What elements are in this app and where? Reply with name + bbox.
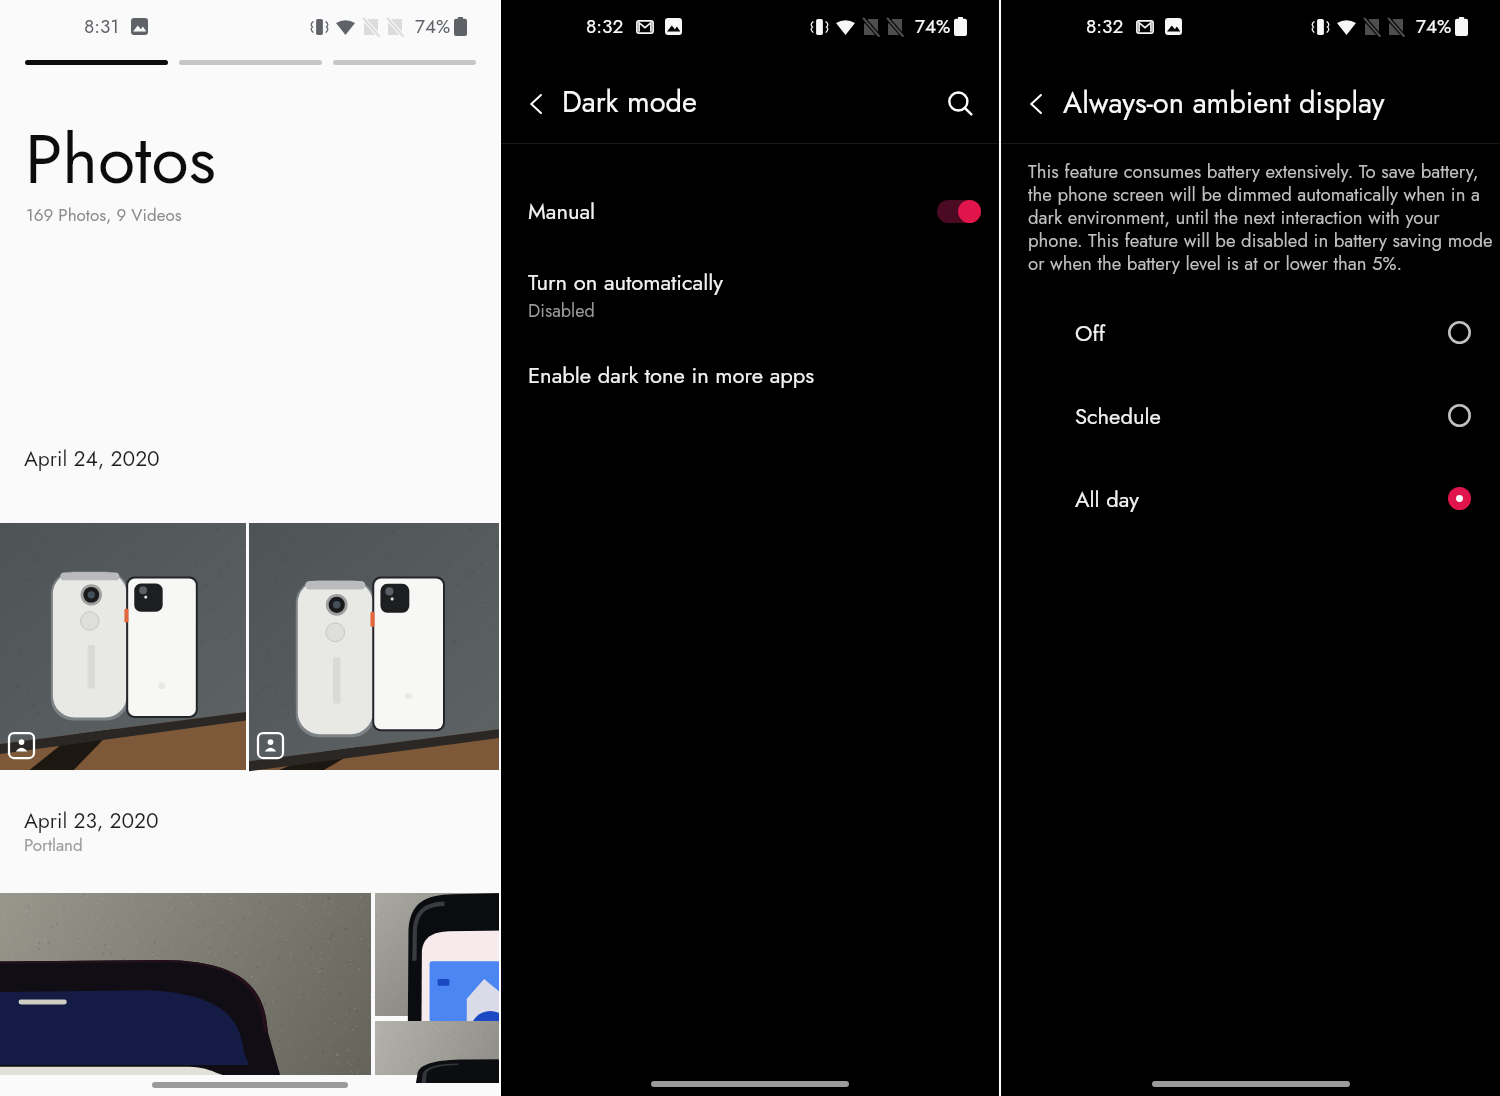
staticText: 8:32 [586,13,624,40]
button[interactable]: Photo [0,523,246,770]
button[interactable]: Enable dark tone in more apps [501,357,999,397]
staticText: All day [1075,483,1139,515]
button[interactable]: All day [1001,457,1500,540]
button[interactable]: Off [1001,291,1500,374]
button[interactable]: Search [939,83,983,127]
staticText: 8:31 [84,13,119,40]
button[interactable]: Turn on automatically [501,264,999,330]
staticText: April 23, 2020 [24,806,159,836]
button[interactable]: Photo [0,893,371,1075]
button[interactable]: Photo [375,1021,499,1075]
staticText: Always-on ambient display [1063,82,1385,124]
button[interactable]: Photo [375,893,499,1016]
button[interactable]: Photos tab [25,60,168,65]
staticText: Enable dark tone in more apps [528,359,815,391]
button[interactable]: Schedule [1001,374,1500,457]
staticText: Schedule [1075,400,1161,432]
staticText: April 24, 2020 [24,444,160,474]
staticText: Dark mode [562,81,697,123]
button[interactable]: Manual [501,180,999,242]
staticText: 74% [915,13,951,40]
staticText: Disabled [528,298,595,324]
staticText: This feature consumes battery extensivel… [1028,158,1493,277]
staticText: Portland [24,833,83,858]
button[interactable]: Tab [333,60,476,65]
staticText: Photos [25,110,216,208]
button[interactable]: Tab [179,60,322,65]
staticText: Manual [528,195,596,227]
staticText: 74% [1416,13,1452,40]
button[interactable]: Back [1015,82,1059,126]
staticText: Turn on automatically [528,266,723,298]
button[interactable]: Photo [249,523,499,770]
staticText: Off [1075,317,1105,349]
staticText: 8:32 [1086,13,1124,40]
button[interactable]: Back [515,82,559,126]
staticText: 74% [415,13,451,40]
staticText: 169 Photos, 9 Videos [26,203,182,228]
